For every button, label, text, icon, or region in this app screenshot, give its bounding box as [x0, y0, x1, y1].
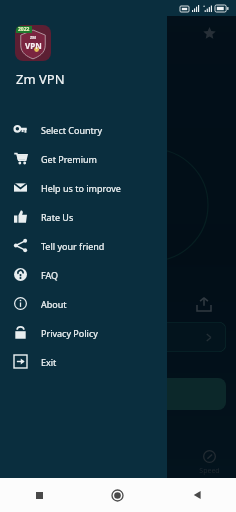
staticText: Privacy Policy [41, 327, 98, 339]
button[interactable]: Tell your friend [0, 231, 167, 260]
staticText: Tell your friend [41, 240, 105, 252]
button[interactable]: About [0, 289, 167, 318]
button[interactable]: Recent apps [0, 478, 78, 512]
button[interactable]: Back [157, 478, 236, 512]
button[interactable]: Exit [0, 347, 167, 376]
staticText: Select Country [41, 124, 103, 136]
button[interactable]: Get Premium [0, 144, 167, 173]
button[interactable]: Home [78, 478, 157, 512]
button[interactable]: Select Country [0, 115, 167, 144]
staticText: 2022 [18, 26, 30, 33]
staticText: Speed [199, 466, 220, 476]
staticText: FAQ [41, 269, 59, 281]
staticText: Help us to improve [41, 182, 121, 194]
button[interactable]: ZM [15, 25, 51, 61]
staticText: Zm VPN [16, 70, 65, 88]
button[interactable]: FAQ [0, 260, 167, 289]
staticText: ZM [30, 35, 37, 40]
staticText: Rate Us [41, 211, 74, 223]
button[interactable]: Help us to improve [0, 173, 167, 202]
button[interactable]: Share [192, 292, 216, 316]
staticText: Get Premium [41, 153, 97, 165]
button[interactable]: Speed [192, 450, 226, 476]
button[interactable]: Privacy Policy [0, 318, 167, 347]
staticText: About [41, 298, 67, 310]
button[interactable]: Favorite [196, 20, 222, 46]
button[interactable]: Rate Us [0, 202, 167, 231]
staticText: VPN [25, 40, 42, 51]
staticText: Exit [41, 356, 57, 368]
button[interactable] [150, 378, 226, 410]
button[interactable] [150, 322, 226, 352]
